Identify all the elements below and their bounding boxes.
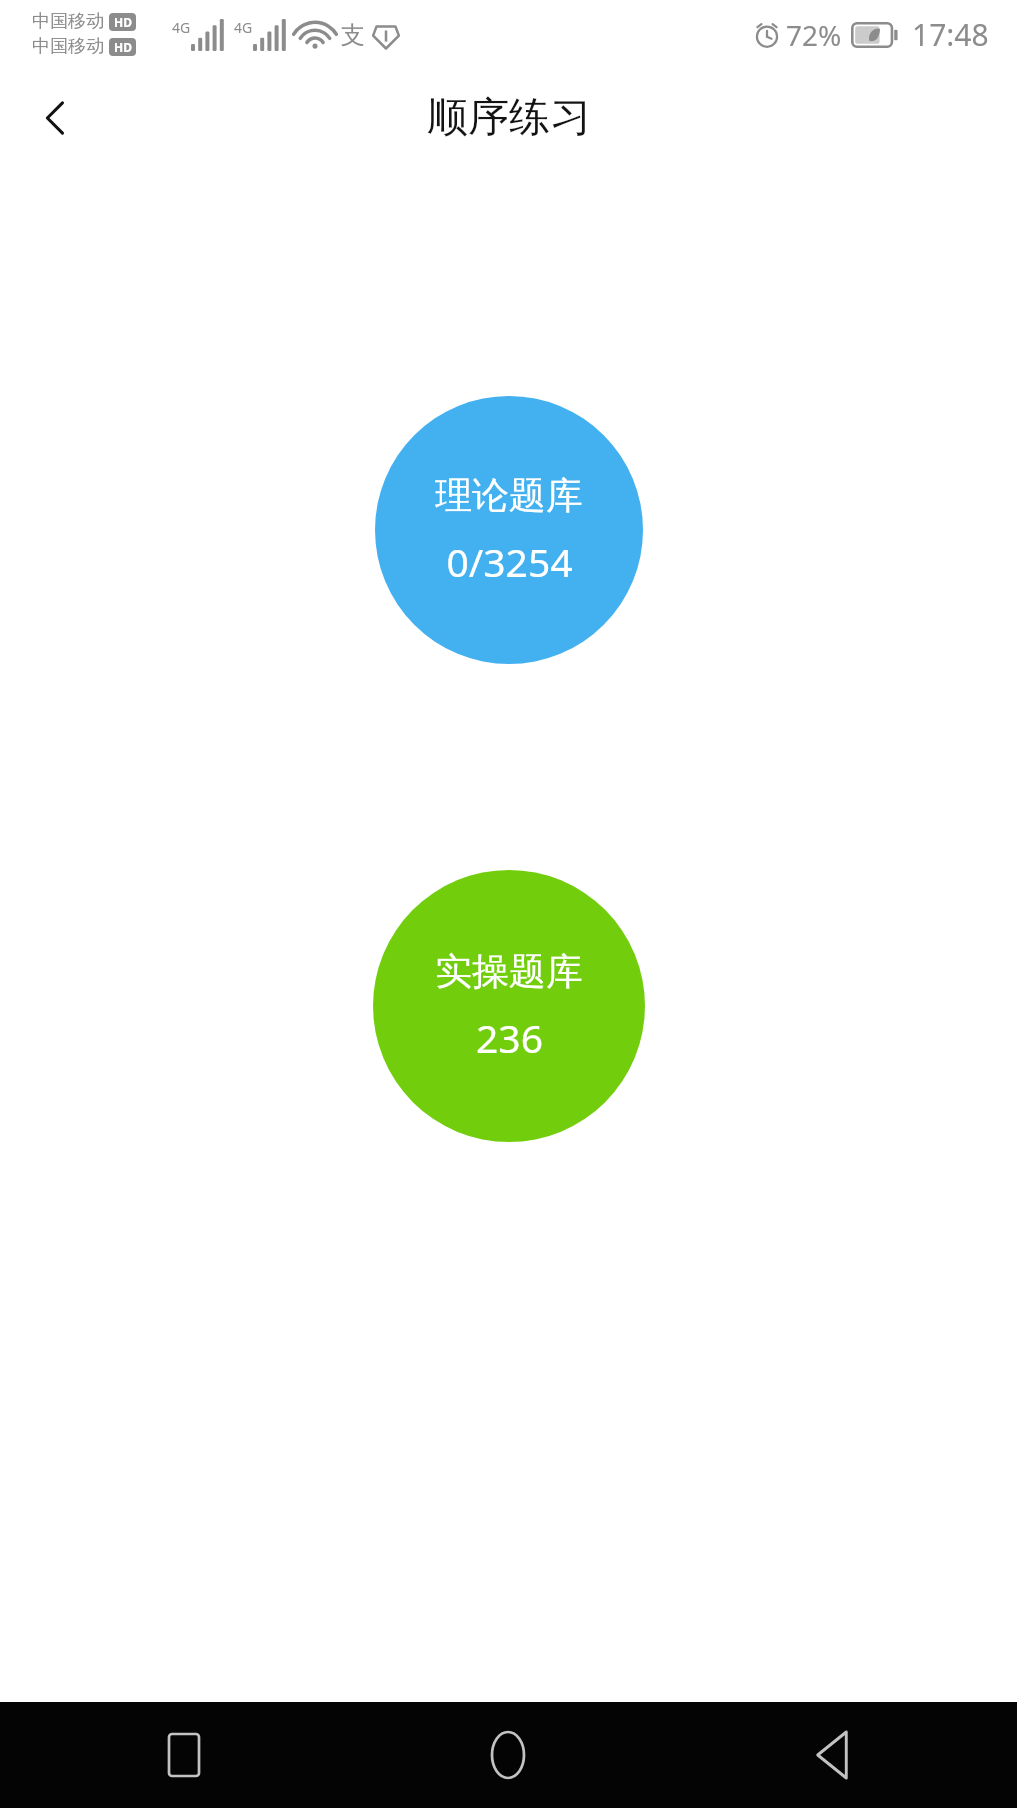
staticText: 中国移动 <box>32 35 104 58</box>
button[interactable]: Home <box>460 1707 556 1803</box>
staticText: 顺序练习 <box>427 92 591 144</box>
staticText: 0/3254 <box>446 535 573 588</box>
staticText: 236 <box>476 1011 543 1064</box>
button[interactable]: Recents <box>136 1707 232 1803</box>
staticText: 实操题库 <box>435 948 583 995</box>
button[interactable]: 理论题库 <box>375 396 643 664</box>
staticText: 中国移动 <box>32 10 104 33</box>
staticText: 4G <box>234 18 253 37</box>
button[interactable]: Back <box>18 80 94 156</box>
staticText: 17:48 <box>912 14 989 55</box>
staticText: 72% <box>786 16 842 54</box>
staticText: HD <box>114 39 132 55</box>
button[interactable]: Back <box>784 1707 880 1803</box>
staticText: 4G <box>172 18 191 37</box>
staticText: 理论题库 <box>435 472 583 519</box>
staticText: HD <box>114 14 132 30</box>
staticText: 支 <box>341 20 365 50</box>
button[interactable]: 实操题库 <box>373 870 645 1142</box>
